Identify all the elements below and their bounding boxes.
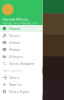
button[interactable]: Photos: [0, 46, 42, 53]
button[interactable]: Videos: [0, 39, 42, 46]
button[interactable]: More Apps: [0, 88, 42, 95]
staticText: Set as Ringtone: [9, 61, 34, 66]
staticText: Photos: [9, 47, 20, 52]
button[interactable]: Music: [0, 32, 42, 39]
button[interactable]: Albums: [0, 53, 42, 60]
button[interactable]: Rate Us: [0, 81, 42, 88]
staticText: Hannah Wilson: [2, 16, 28, 22]
button[interactable]: Home: [0, 25, 42, 32]
staticText: hannah.wilson@gmail.com: [2, 22, 37, 25]
button[interactable]: Share: [0, 74, 42, 81]
staticText: Share: [9, 75, 19, 80]
staticText: Music: [9, 33, 20, 38]
staticText: Albums: [9, 54, 23, 59]
staticText: Home: [9, 26, 20, 31]
staticText: Rate Us: [9, 82, 22, 87]
button[interactable]: Set as Ringtone: [0, 60, 42, 67]
button[interactable]: Hannah Wilson: [0, 0, 42, 25]
staticText: More Options: [3, 69, 22, 72]
staticText: Videos: [9, 40, 20, 45]
staticText: More Apps: [9, 89, 29, 94]
